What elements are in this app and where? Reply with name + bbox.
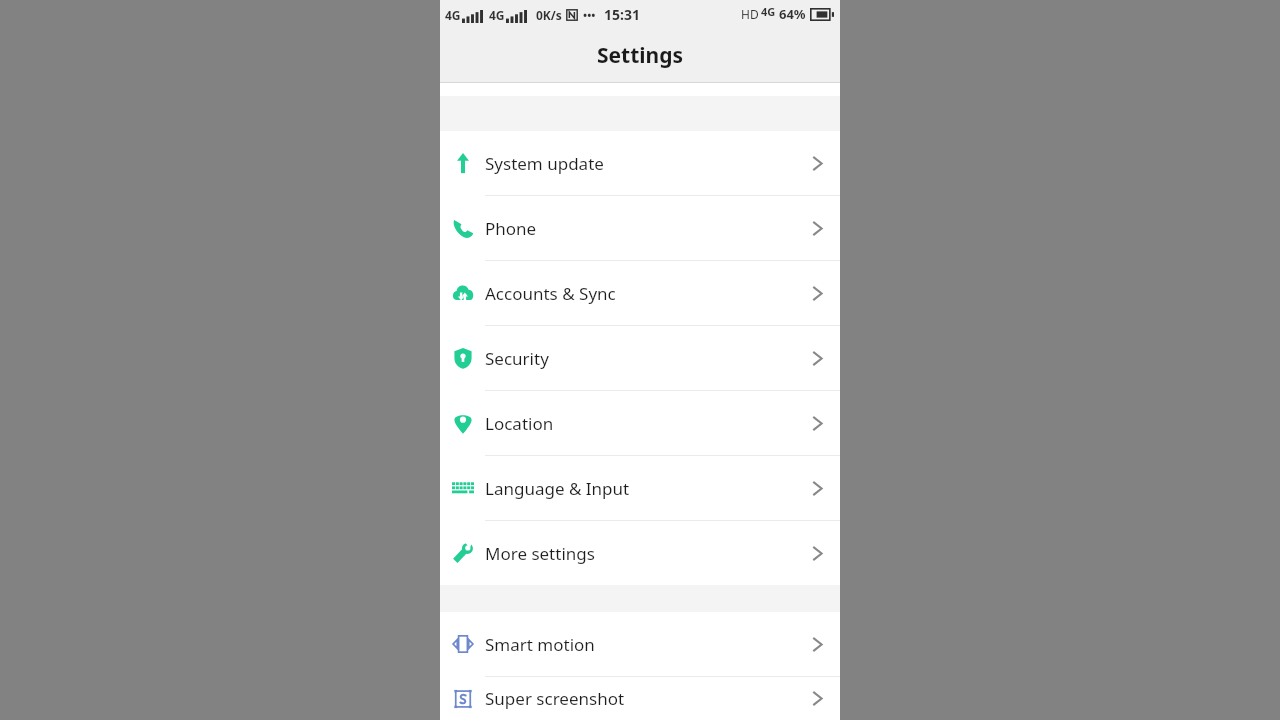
button[interactable]: Super screenshot	[440, 677, 840, 720]
staticText: 64%	[779, 5, 806, 23]
other: Open Security	[795, 326, 840, 390]
staticText: Phone	[485, 217, 795, 240]
staticText: 4G	[445, 7, 461, 23]
staticText: System update	[485, 152, 795, 175]
staticText: 4G	[489, 7, 505, 23]
staticText: 15:31	[604, 5, 640, 24]
staticText: Smart motion	[485, 633, 795, 656]
button[interactable]: Accounts & Sync	[440, 261, 840, 326]
staticText: HD	[741, 6, 759, 22]
staticText: Location	[485, 412, 795, 435]
other: Open Location	[795, 391, 840, 455]
button[interactable]: System update	[440, 131, 840, 196]
button[interactable]: Phone	[440, 196, 840, 261]
staticText: More settings	[485, 542, 795, 565]
staticText: Settings	[597, 41, 684, 70]
other: Open Phone	[795, 196, 840, 260]
other: Open Language & Input	[795, 456, 840, 520]
staticText: 4G	[761, 4, 776, 19]
staticText: 0K/s	[536, 7, 562, 23]
other: Open Smart motion	[795, 612, 840, 676]
staticText: Accounts & Sync	[485, 282, 795, 305]
button[interactable]: Smart motion	[440, 612, 840, 677]
other: Open Super screenshot	[795, 677, 840, 720]
staticText: •••	[583, 7, 596, 22]
staticText: Super screenshot	[485, 687, 795, 710]
other: Open Accounts & Sync	[795, 261, 840, 325]
button[interactable]: Language & Input	[440, 456, 840, 521]
staticText: Security	[485, 347, 795, 370]
button[interactable]: Security	[440, 326, 840, 391]
other: Open More settings	[795, 521, 840, 585]
button[interactable]: More settings	[440, 521, 840, 585]
button[interactable]: Location	[440, 391, 840, 456]
staticText: Language & Input	[485, 477, 795, 500]
other: Open System update	[795, 131, 840, 195]
